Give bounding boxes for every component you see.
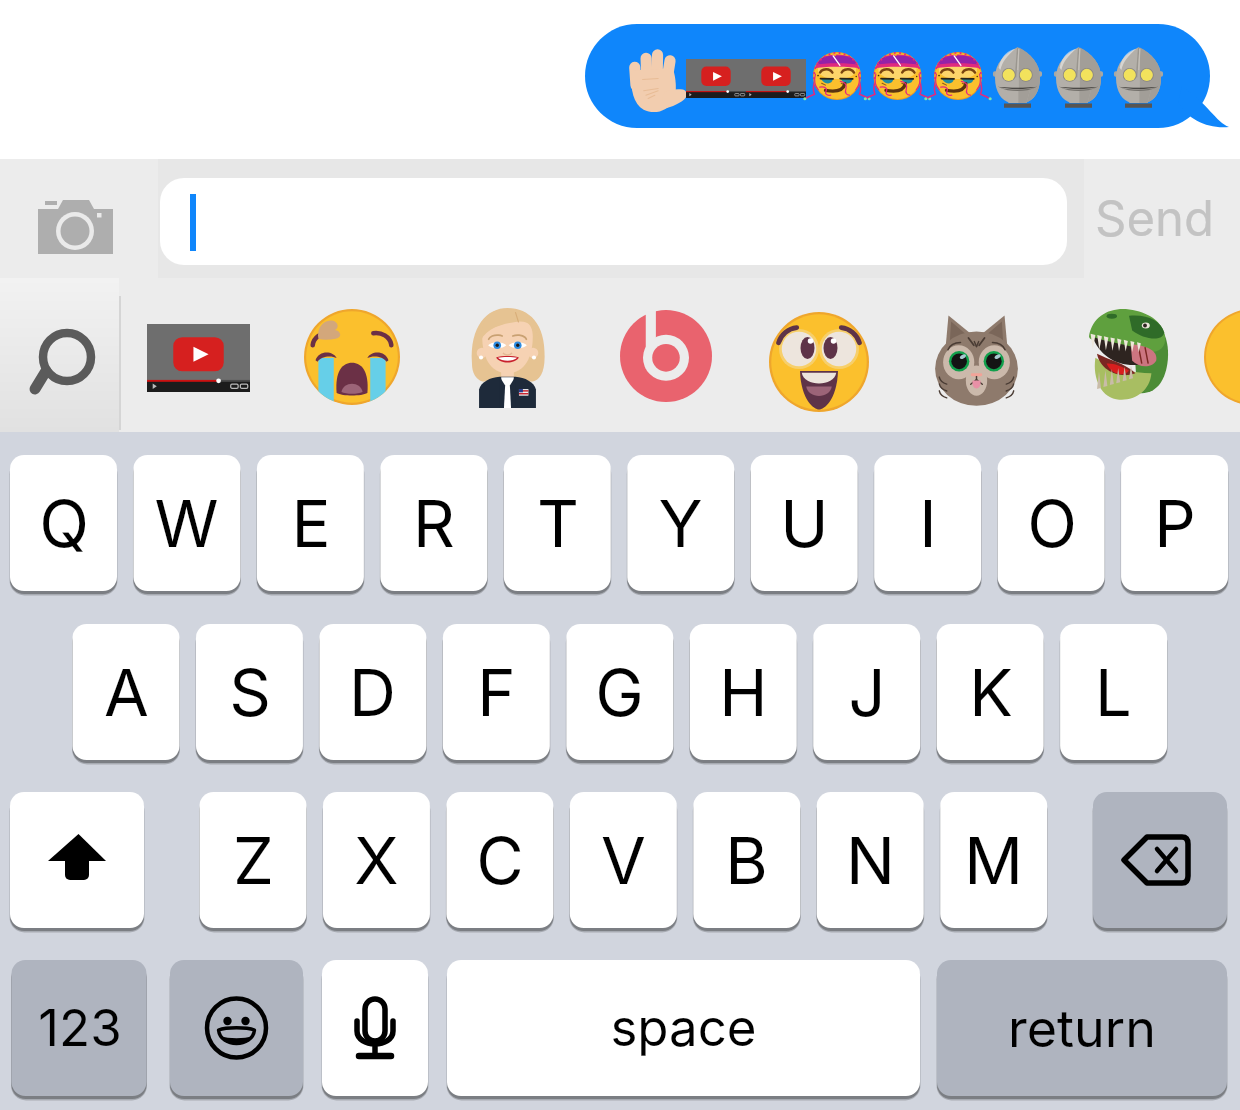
- button[interactable]: I: [874, 455, 981, 591]
- staticText: A: [104, 653, 149, 732]
- button[interactable]: V: [570, 792, 677, 928]
- button[interactable]: P: [1121, 455, 1228, 591]
- staticText: N: [846, 821, 895, 900]
- button[interactable]: Shift: [10, 792, 144, 928]
- staticText: V: [601, 821, 646, 900]
- button[interactable]: Emoji: [170, 960, 303, 1096]
- button[interactable]: D: [319, 624, 426, 760]
- staticText: Send: [1095, 189, 1214, 248]
- staticText: S: [229, 653, 271, 732]
- staticText: W: [154, 484, 219, 563]
- button[interactable]: G: [566, 624, 673, 760]
- button[interactable]: Camera: [0, 159, 152, 278]
- button[interactable]: K: [937, 624, 1044, 760]
- button[interactable]: Sticker: [746, 278, 901, 432]
- button[interactable]: Backspace: [1093, 792, 1227, 928]
- staticText: U: [780, 484, 829, 563]
- button[interactable]: H: [690, 624, 797, 760]
- button[interactable]: [162, 178, 1067, 266]
- button[interactable]: Send: [1076, 159, 1232, 278]
- button[interactable]: Z: [200, 792, 307, 928]
- button[interactable]: U: [751, 455, 858, 591]
- button[interactable]: Dictate: [322, 960, 428, 1096]
- staticText: Q: [39, 484, 89, 563]
- staticText: K: [969, 653, 1013, 732]
- staticText: P: [1154, 484, 1196, 563]
- button[interactable]: A: [73, 624, 180, 760]
- staticText: Y: [658, 484, 703, 563]
- staticText: M: [964, 821, 1023, 900]
- button[interactable]: 123: [12, 960, 147, 1096]
- button[interactable]: Sticker: [281, 278, 436, 432]
- button[interactable]: L: [1060, 624, 1167, 760]
- button[interactable]: S: [196, 624, 303, 760]
- button[interactable]: space: [447, 960, 920, 1096]
- button[interactable]: Sticker: [901, 278, 1056, 432]
- staticText: H: [719, 653, 768, 732]
- staticText: D: [349, 653, 396, 732]
- button[interactable]: E: [257, 455, 364, 591]
- staticText: I: [919, 484, 937, 563]
- button[interactable]: J: [813, 624, 920, 760]
- button[interactable]: B: [693, 792, 800, 928]
- button[interactable]: Q: [10, 455, 117, 591]
- staticText: return: [1008, 997, 1156, 1060]
- staticText: C: [476, 821, 524, 900]
- button[interactable]: X: [323, 792, 430, 928]
- button[interactable]: Sticker: [1056, 278, 1211, 432]
- staticText: J: [848, 653, 886, 732]
- staticText: O: [1027, 484, 1077, 563]
- button[interactable]: W: [133, 455, 240, 591]
- staticText: F: [477, 653, 516, 732]
- staticText: 123: [38, 997, 122, 1059]
- button[interactable]: T: [504, 455, 611, 591]
- button[interactable]: R: [380, 455, 487, 591]
- button[interactable]: O: [998, 455, 1105, 591]
- button[interactable]: C: [446, 792, 553, 928]
- button[interactable]: Sticker: [126, 278, 281, 432]
- button[interactable]: Y: [627, 455, 734, 591]
- staticText: R: [413, 484, 455, 563]
- button[interactable]: F: [443, 624, 550, 760]
- staticText: L: [1095, 653, 1132, 732]
- button[interactable]: M: [940, 792, 1047, 928]
- staticText: E: [291, 484, 331, 563]
- button[interactable]: Sticker: [436, 278, 591, 432]
- button[interactable]: return: [937, 960, 1227, 1096]
- staticText: G: [595, 653, 644, 732]
- staticText: T: [537, 484, 579, 563]
- staticText: space: [610, 997, 757, 1059]
- button[interactable]: Sticker: [591, 278, 746, 432]
- staticText: Z: [233, 821, 274, 900]
- staticText: B: [725, 821, 768, 900]
- button[interactable]: Search: [0, 278, 119, 432]
- staticText: X: [354, 821, 399, 900]
- button[interactable]: N: [817, 792, 924, 928]
